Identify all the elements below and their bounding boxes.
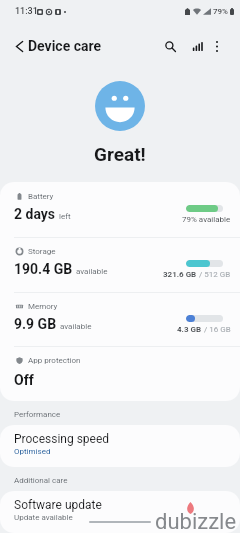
staticText: 190.4 GB bbox=[14, 261, 73, 277]
staticText: Additional care bbox=[14, 476, 68, 485]
button[interactable]: Storage bbox=[0, 237, 240, 292]
button[interactable]: App protection bbox=[0, 346, 240, 401]
staticText: Memory bbox=[28, 302, 58, 311]
staticText: 79% bbox=[213, 7, 228, 16]
button[interactable]: Search bbox=[158, 34, 183, 59]
button[interactable]: Usage statistics bbox=[184, 34, 209, 59]
staticText: Storage bbox=[28, 247, 56, 256]
staticText: 11:31 bbox=[15, 6, 38, 17]
staticText: 321.6 GB bbox=[163, 270, 197, 279]
staticText: 2 days bbox=[14, 206, 56, 222]
staticText: Update available bbox=[14, 513, 73, 522]
staticText: Processing speed bbox=[14, 432, 110, 446]
staticText: Device care bbox=[28, 38, 102, 54]
staticText: App protection bbox=[28, 356, 81, 365]
staticText: Optimised bbox=[14, 447, 51, 456]
staticText: available bbox=[76, 267, 108, 276]
staticText: Great! bbox=[94, 143, 146, 165]
staticText: 79% available bbox=[182, 215, 231, 224]
button[interactable]: Navigate up bbox=[8, 35, 31, 58]
staticText: 4.3 GB bbox=[177, 325, 202, 334]
button[interactable]: Battery bbox=[0, 182, 240, 237]
button[interactable]: More options bbox=[204, 34, 229, 59]
button[interactable]: Memory bbox=[0, 292, 240, 347]
staticText: / 16 GB bbox=[202, 325, 231, 334]
staticText: dubizzle bbox=[155, 509, 237, 533]
staticText: left bbox=[59, 212, 71, 221]
staticText: Battery bbox=[28, 192, 54, 201]
staticText: Software update bbox=[14, 498, 102, 512]
staticText: / 512 GB bbox=[197, 270, 231, 279]
button[interactable]: Processing speed bbox=[0, 425, 240, 467]
staticText: available bbox=[60, 322, 92, 331]
staticText: Off bbox=[14, 372, 34, 388]
staticText: Performance bbox=[14, 410, 61, 419]
staticText: 9.9 GB bbox=[14, 316, 57, 332]
button[interactable]: Software update bbox=[0, 491, 240, 533]
